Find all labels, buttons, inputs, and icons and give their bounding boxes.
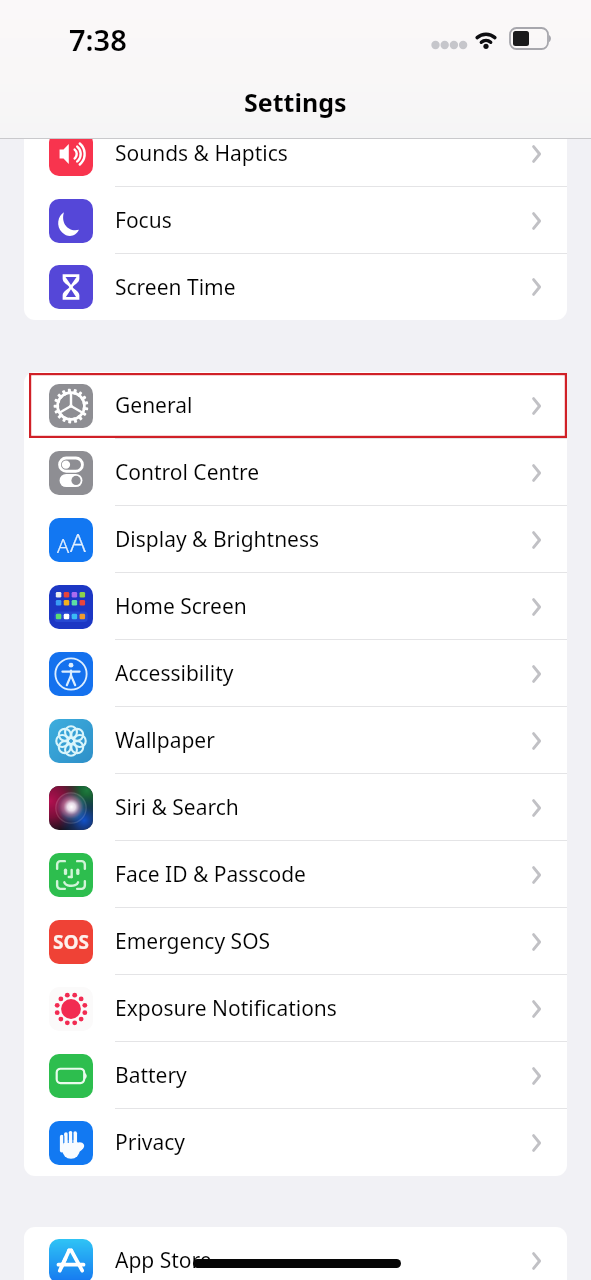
staticText: Screen Time bbox=[115, 273, 236, 302]
button[interactable]: A bbox=[24, 506, 567, 573]
button[interactable]: App Store bbox=[24, 1227, 567, 1280]
staticText: Exposure Notifications bbox=[115, 994, 337, 1023]
button[interactable]: Accessibility bbox=[24, 640, 567, 707]
staticText: Siri & Search bbox=[115, 793, 239, 822]
button[interactable]: Exposure Notifications bbox=[24, 975, 567, 1042]
staticText: Control Centre bbox=[115, 458, 260, 487]
button[interactable]: Screen Time bbox=[24, 254, 567, 320]
staticText: SOS bbox=[53, 929, 89, 955]
staticText: Accessibility bbox=[115, 659, 234, 688]
staticText: Display & Brightness bbox=[115, 525, 320, 554]
button[interactable]: Siri & Search bbox=[24, 774, 567, 841]
staticText: Sounds & Haptics bbox=[115, 139, 288, 168]
button[interactable]: Focus bbox=[24, 187, 567, 254]
staticText: A bbox=[70, 524, 86, 559]
button[interactable]: General bbox=[24, 372, 567, 439]
button[interactable]: Face ID & Passcode bbox=[24, 841, 567, 908]
staticText: Settings bbox=[244, 85, 347, 119]
button[interactable]: Control Centre bbox=[24, 439, 567, 506]
staticText: General bbox=[115, 391, 193, 420]
staticText: A bbox=[57, 532, 70, 559]
button[interactable]: Privacy bbox=[24, 1109, 567, 1176]
staticText: Privacy bbox=[115, 1128, 186, 1157]
button[interactable]: Wallpaper bbox=[24, 707, 567, 774]
button[interactable]: Home Screen bbox=[24, 573, 567, 640]
button[interactable]: Battery bbox=[24, 1042, 567, 1109]
staticText: Face ID & Passcode bbox=[115, 860, 306, 889]
staticText: Wallpaper bbox=[115, 726, 215, 755]
button[interactable]: Sounds & Haptics bbox=[24, 120, 567, 187]
staticText: Battery bbox=[115, 1061, 187, 1090]
staticText: Home Screen bbox=[115, 592, 247, 621]
staticText: App Store bbox=[115, 1246, 212, 1275]
button[interactable]: SOS bbox=[24, 908, 567, 975]
staticText: Focus bbox=[115, 206, 172, 235]
staticText: 7:38 bbox=[69, 20, 127, 59]
staticText: Emergency SOS bbox=[115, 927, 271, 956]
